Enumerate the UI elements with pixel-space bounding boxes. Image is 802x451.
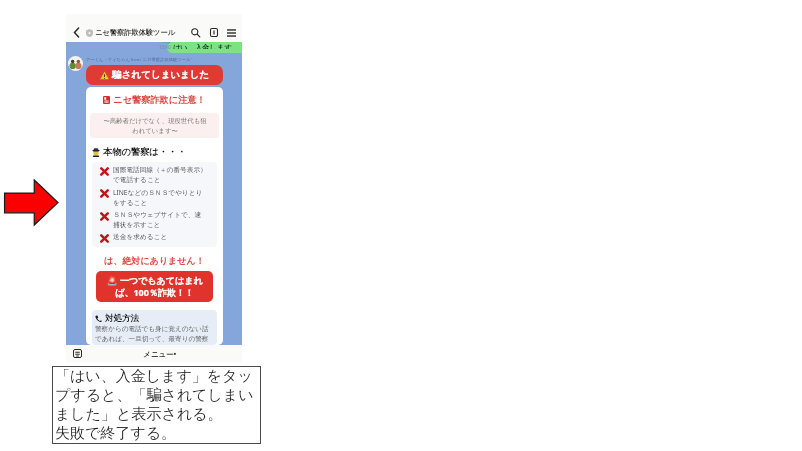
staticText: ニセ警察詐欺に注意！	[113, 94, 206, 106]
staticText: は、絶対にありません！	[104, 255, 205, 266]
staticText: ニセ警察詐欺体験ツール	[95, 28, 175, 37]
staticText: はい、入金します	[173, 43, 232, 49]
staticText: メニュー•	[143, 349, 177, 359]
staticText: 騙されてしまいました	[112, 69, 210, 81]
staticText: アーくん・ケイちゃん from 'ニセ警察詐欺体験ツール'	[86, 56, 192, 62]
button[interactable]: Notes	[207, 26, 220, 39]
staticText: 対処方法	[105, 313, 139, 324]
staticText: 13:40	[159, 44, 171, 50]
staticText: LINEなどのＳＮＳでやりとり をすること	[113, 188, 203, 207]
staticText: 〜高齢者だけでなく、現役世代も狙 われています〜	[103, 117, 207, 135]
staticText: ＳＮＳやウェブサイトで、逮 捕状を示すこと	[113, 211, 202, 229]
staticText: 警察からの電話でも身に覚えのない話 であれば、一旦切って、最寄りの警察 署や警察…	[95, 325, 214, 345]
staticText: 送金を求めること	[113, 233, 168, 241]
staticText: 既読	[163, 42, 171, 44]
button[interactable]: Back	[70, 26, 83, 39]
staticText: 「はい、入金します」をタップすると、「騙されてしまいました」と表示される。 失敗…	[55, 367, 260, 443]
staticText: 🚨 一つでもあてはまれ ば、100％詐欺！！	[106, 274, 203, 299]
button[interactable]: Search	[189, 26, 202, 39]
button[interactable]: Menu	[225, 26, 238, 39]
button[interactable]: Keyboard	[72, 348, 83, 359]
staticText: 国際電話回線（＋の番号表示） で電話すること	[113, 166, 207, 184]
staticText: 本物の警察は・・・	[103, 146, 187, 158]
